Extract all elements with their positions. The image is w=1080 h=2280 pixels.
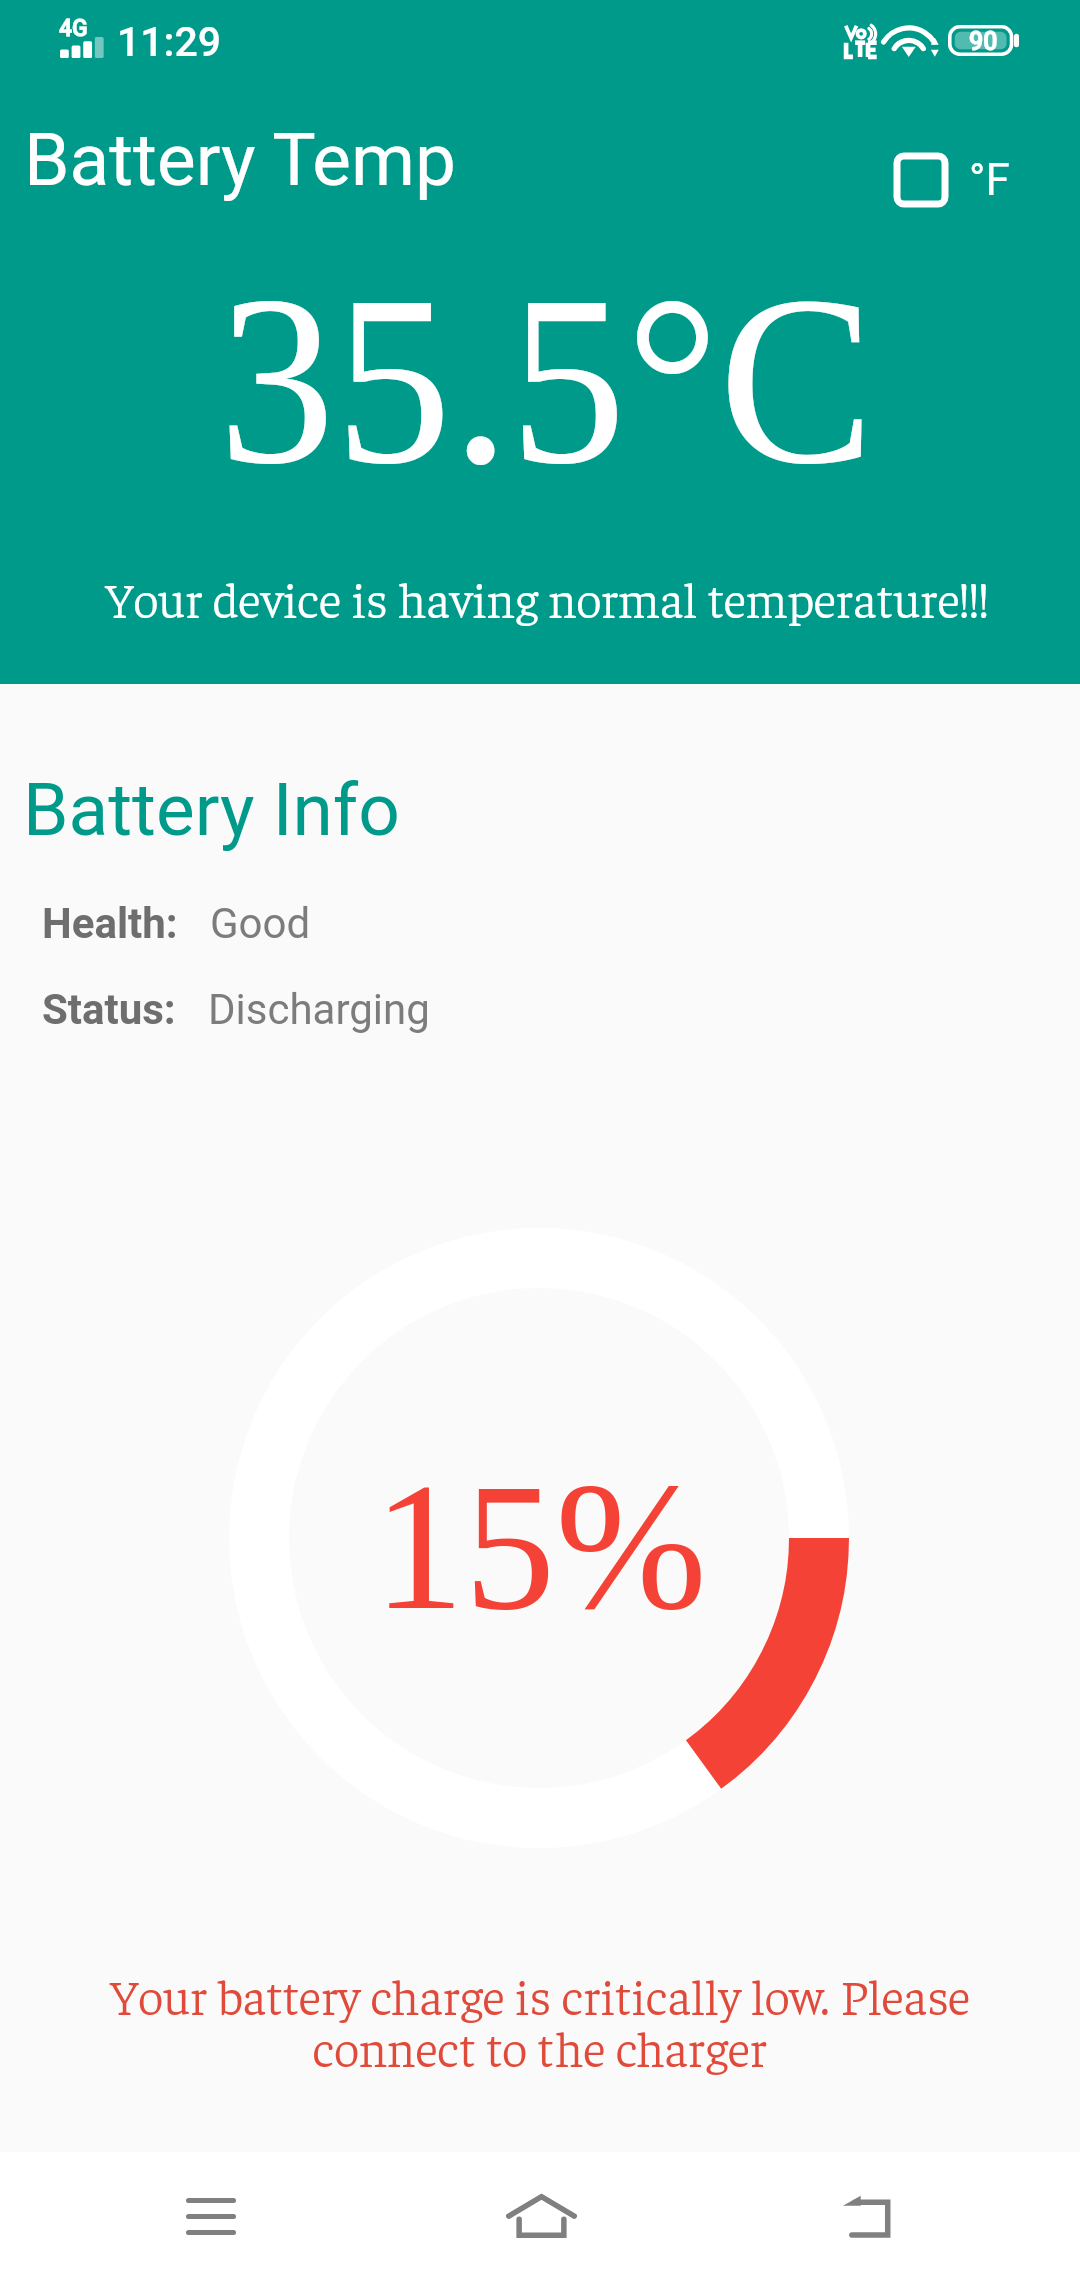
staticText: Your battery charge is critically low. P… [95, 1963, 985, 2078]
staticText: °F [969, 154, 1010, 206]
button[interactable]: Home [360, 2152, 720, 2280]
staticText: 90 [969, 27, 998, 56]
staticText: Health: [42, 899, 178, 948]
staticText: 35.5°C [218, 247, 874, 514]
staticText: Discharging [208, 985, 430, 1034]
button[interactable]: Toggle Fahrenheit unit [893, 152, 1010, 208]
staticText: 4G [59, 15, 88, 42]
button[interactable]: Back [720, 2152, 1080, 2280]
button[interactable]: Recent apps [0, 2152, 360, 2280]
staticText: Your device is having normal temperature… [7, 566, 1080, 629]
staticText: Good [210, 899, 311, 948]
staticText: 15% [0, 1446, 1080, 1648]
staticText: Battery Temp [24, 117, 457, 203]
staticText: Status: [42, 985, 176, 1034]
staticText: Battery Info [23, 767, 400, 853]
staticText: 11:29 [117, 18, 222, 66]
other: Toggle Fahrenheit unit [893, 152, 949, 208]
